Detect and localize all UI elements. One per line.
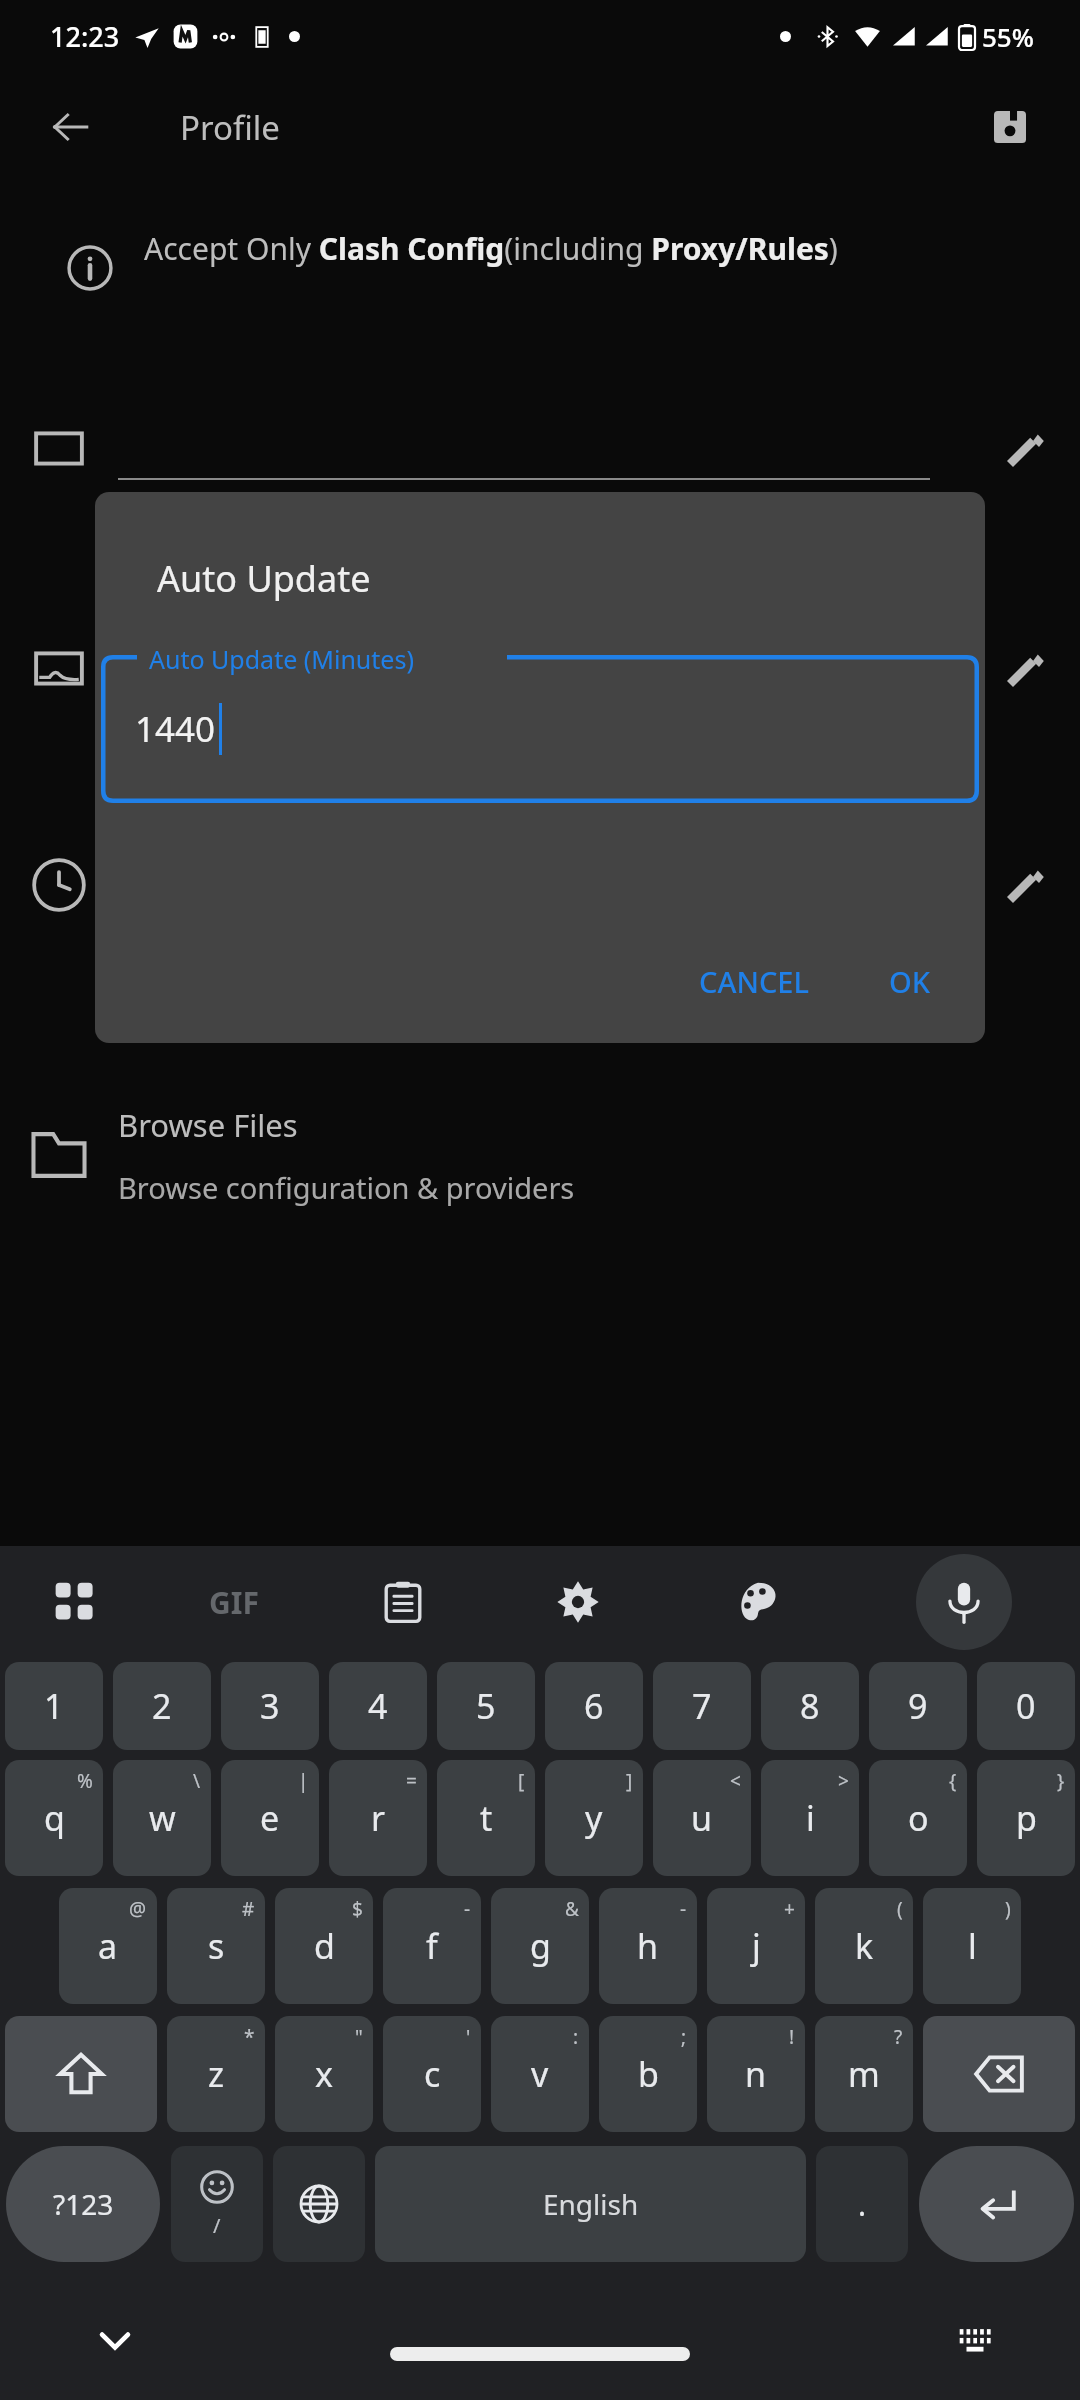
button[interactable]: 9 [869, 1662, 967, 1750]
button[interactable]: { [869, 1760, 967, 1876]
button[interactable]: Back [30, 87, 110, 167]
button[interactable]: 6 [545, 1662, 643, 1750]
button[interactable]: Clipboard [318, 1546, 488, 1658]
button[interactable]: . [816, 2146, 908, 2262]
button[interactable]: ' [383, 2016, 481, 2132]
button[interactable]: Emoji [171, 2146, 263, 2262]
button[interactable]: ] [545, 1760, 643, 1876]
staticText: g [530, 1923, 551, 1969]
staticText: - [680, 1896, 687, 1922]
button[interactable]: - [599, 1888, 697, 2004]
staticText: & [565, 1896, 579, 1922]
button[interactable]: $ [275, 1888, 373, 2004]
staticText: OK [889, 962, 931, 1001]
staticText: " [355, 2024, 363, 2050]
staticText: o [908, 1795, 929, 1841]
staticText: > [838, 1768, 849, 1794]
staticText: Browse Files [118, 1104, 298, 1146]
staticText: 0 [1016, 1683, 1036, 1729]
staticText: # [242, 1896, 255, 1922]
staticText: @ [129, 1896, 147, 1922]
button[interactable]: 7 [653, 1662, 751, 1750]
button[interactable]: } [977, 1760, 1075, 1876]
button[interactable]: * [167, 2016, 265, 2132]
staticText: | [298, 1768, 309, 1794]
button[interactable]: CANCEL [681, 948, 827, 1015]
button[interactable]: 8 [761, 1662, 859, 1750]
staticText: 8 [800, 1683, 820, 1729]
button[interactable]: ( [815, 1888, 913, 2004]
staticText: ; [681, 2024, 687, 2050]
staticText: [ [518, 1768, 525, 1794]
staticText: $ [352, 1896, 363, 1922]
staticText: 9 [908, 1683, 928, 1729]
button[interactable]: " [275, 2016, 373, 2132]
button[interactable]: & [491, 1888, 589, 2004]
button[interactable]: Backspace [923, 2016, 1075, 2132]
staticText: x [315, 2051, 333, 2097]
button[interactable]: 2 [113, 1662, 211, 1750]
button[interactable]: : [491, 2016, 589, 2132]
button[interactable]: ! [707, 2016, 805, 2132]
staticText: s [208, 1923, 225, 1969]
staticText: k [855, 1923, 874, 1969]
button[interactable]: ; [599, 2016, 697, 2132]
button[interactable]: = [329, 1760, 427, 1876]
staticText: w [149, 1795, 176, 1841]
button[interactable] [0, 594, 1080, 744]
staticText: a [98, 1923, 118, 1969]
button[interactable]: ) [923, 1888, 1021, 2004]
button[interactable]: - [383, 1888, 481, 2004]
button[interactable]: \ [113, 1760, 211, 1876]
button[interactable] [0, 374, 1080, 524]
staticText: 1440 [135, 705, 216, 753]
staticText: 12:23 [50, 18, 120, 55]
button[interactable]: ?123 [6, 2146, 160, 2262]
staticText: + [784, 1896, 795, 1922]
button[interactable]: Enter [919, 2146, 1074, 2262]
staticText: 1 [44, 1683, 64, 1729]
staticText: Auto Update [157, 554, 371, 603]
button[interactable]: | [221, 1760, 319, 1876]
button[interactable]: Voice input [916, 1554, 1012, 1650]
button[interactable]: Save [970, 87, 1050, 167]
staticText: : [573, 2024, 579, 2050]
button[interactable]: # [167, 1888, 265, 2004]
button[interactable]: + [707, 1888, 805, 2004]
button[interactable]: Themes [668, 1546, 848, 1658]
button[interactable]: ? [815, 2016, 913, 2132]
button[interactable]: Hide keyboard [80, 2305, 150, 2375]
button[interactable]: [ [437, 1760, 535, 1876]
button[interactable]: 0 [977, 1662, 1075, 1750]
button[interactable]: Change language [273, 2146, 365, 2262]
staticText: d [314, 1923, 335, 1969]
button[interactable]: 1 [5, 1662, 103, 1750]
staticText: % [77, 1768, 93, 1794]
staticText: j [752, 1923, 761, 1969]
button[interactable]: 3 [221, 1662, 319, 1750]
button[interactable]: Switch keyboard [940, 2305, 1010, 2375]
button[interactable]: 4 [329, 1662, 427, 1750]
button[interactable]: 5 [437, 1662, 535, 1750]
staticText: z [208, 2051, 224, 2097]
staticText: < [730, 1768, 741, 1794]
staticText: Auto Update (Minutes) [149, 642, 414, 676]
staticText: 2 [152, 1683, 172, 1729]
button[interactable]: > [761, 1760, 859, 1876]
button[interactable]: Browse Files [0, 1070, 1080, 1240]
staticText: - [464, 1896, 471, 1922]
button[interactable]: @ [59, 1888, 157, 2004]
button[interactable]: Settings [488, 1546, 668, 1658]
staticText: = [406, 1768, 417, 1794]
staticText: / [213, 2212, 221, 2239]
button[interactable]: % [5, 1760, 103, 1876]
button[interactable]: GIF [150, 1546, 318, 1658]
staticText: p [1016, 1795, 1037, 1841]
button[interactable]: Disabled [0, 810, 1080, 960]
button[interactable]: English [375, 2146, 806, 2262]
button[interactable]: Shift [5, 2016, 157, 2132]
button[interactable]: OK [871, 948, 949, 1015]
button[interactable]: Apps [0, 1546, 150, 1658]
staticText: n [745, 2051, 767, 2097]
button[interactable]: < [653, 1760, 751, 1876]
